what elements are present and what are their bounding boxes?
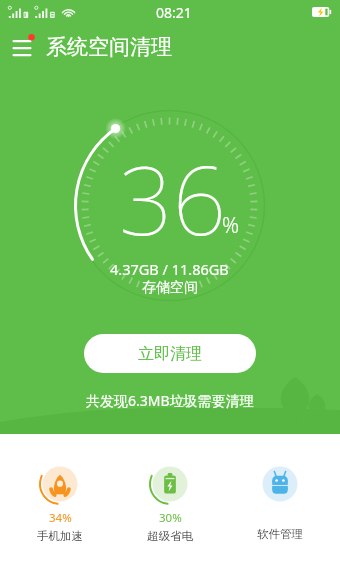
staticText: 36 <box>119 135 227 263</box>
staticText: 存储空间 <box>142 279 198 297</box>
staticText: 4.37GB / 11.86GB <box>110 259 229 279</box>
staticText: 系统空间清理 <box>46 34 172 60</box>
button[interactable]: 软件管理 <box>230 434 330 541</box>
staticText: 30% <box>159 510 182 526</box>
button[interactable]: Menu <box>0 24 46 70</box>
staticText: 超级省电 <box>147 529 193 543</box>
staticText: 立即清理 <box>138 344 202 364</box>
button[interactable]: 30% <box>120 434 220 543</box>
staticText: 软件管理 <box>257 527 303 541</box>
staticText: % <box>222 211 240 240</box>
staticText: 34% <box>49 510 72 526</box>
staticText: 08:21 <box>156 3 192 22</box>
staticText: 手机加速 <box>37 529 83 543</box>
button[interactable]: 34% <box>10 434 110 543</box>
button[interactable]: 立即清理 <box>84 334 256 373</box>
staticText: 共发现6.3MB垃圾需要清理 <box>86 391 254 410</box>
